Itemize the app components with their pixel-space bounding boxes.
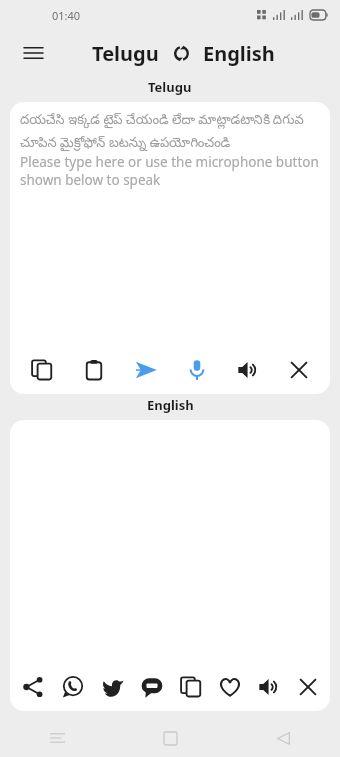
- button[interactable]: Recents: [35, 719, 79, 757]
- button[interactable]: English: [203, 40, 275, 67]
- button[interactable]: Back: [261, 719, 305, 757]
- button[interactable]: Translate: [120, 346, 171, 394]
- button[interactable]: Twitter: [93, 663, 132, 711]
- staticText: దయచేసి ఇక్కడ టైప్ చేయండి లేదా మాట్లాడటాన…: [20, 110, 320, 153]
- button[interactable]: Swap languages: [168, 40, 194, 66]
- button[interactable]: Speak: [222, 346, 273, 394]
- staticText: 01:40: [52, 8, 81, 23]
- button[interactable]: Favourite: [210, 663, 249, 711]
- button[interactable]: Microphone: [171, 346, 222, 394]
- button[interactable]: Telugu: [92, 40, 159, 67]
- button[interactable]: Home: [148, 719, 192, 757]
- button[interactable]: WhatsApp: [53, 663, 93, 711]
- button[interactable]: Share: [13, 663, 53, 711]
- button[interactable]: SMS: [132, 663, 171, 711]
- button[interactable]: Clear: [288, 663, 327, 711]
- button[interactable]: Copy: [16, 346, 68, 394]
- staticText: Telugu: [148, 78, 192, 96]
- staticText: Please type here or use the microphone b…: [20, 153, 320, 189]
- button[interactable]: Paste: [68, 346, 120, 394]
- button[interactable]: Copy: [171, 663, 210, 711]
- button[interactable]: Menu: [14, 34, 52, 72]
- staticText: English: [147, 396, 194, 414]
- button[interactable]: Speak: [249, 663, 288, 711]
- button[interactable]: Clear: [273, 346, 324, 394]
